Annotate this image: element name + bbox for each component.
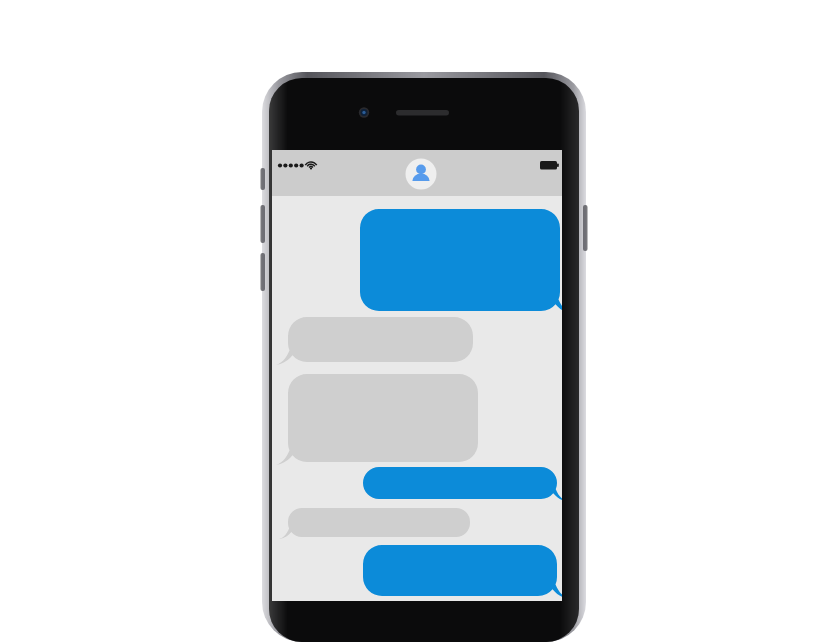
button[interactable]: Received message <box>288 317 473 362</box>
button[interactable]: Sent message <box>360 209 560 311</box>
button[interactable]: Sent message <box>363 467 557 499</box>
button[interactable]: Received message <box>288 508 470 537</box>
button[interactable]: Received message <box>288 374 478 462</box>
button[interactable]: Sent message <box>363 545 557 596</box>
button[interactable]: Contact profile <box>406 159 437 190</box>
